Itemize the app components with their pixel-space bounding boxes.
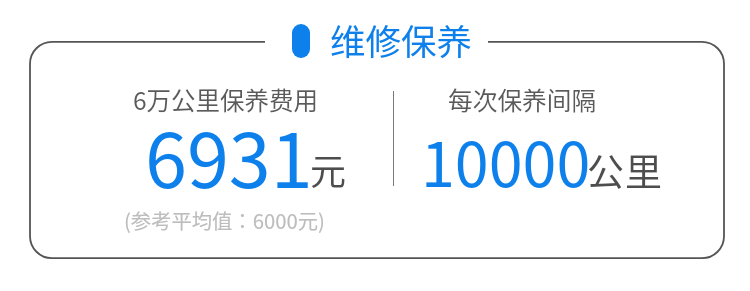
staticText: 6931	[145, 100, 313, 209]
button[interactable]: 每次保养间隔 10000公里	[400, 78, 712, 198]
staticText: 维修保养	[330, 14, 473, 65]
staticText: 6万公里保养费用	[133, 82, 319, 117]
button[interactable]: 维修保养	[286, 18, 478, 64]
button[interactable]: 6万公里保养费用 6931元	[40, 78, 388, 240]
staticText: 公里	[587, 143, 663, 197]
staticText: 10000	[421, 116, 591, 204]
staticText: 元	[310, 143, 347, 195]
staticText: 每次保养间隔	[448, 81, 597, 117]
staticText: (参考平均值：6000元)	[124, 205, 325, 234]
